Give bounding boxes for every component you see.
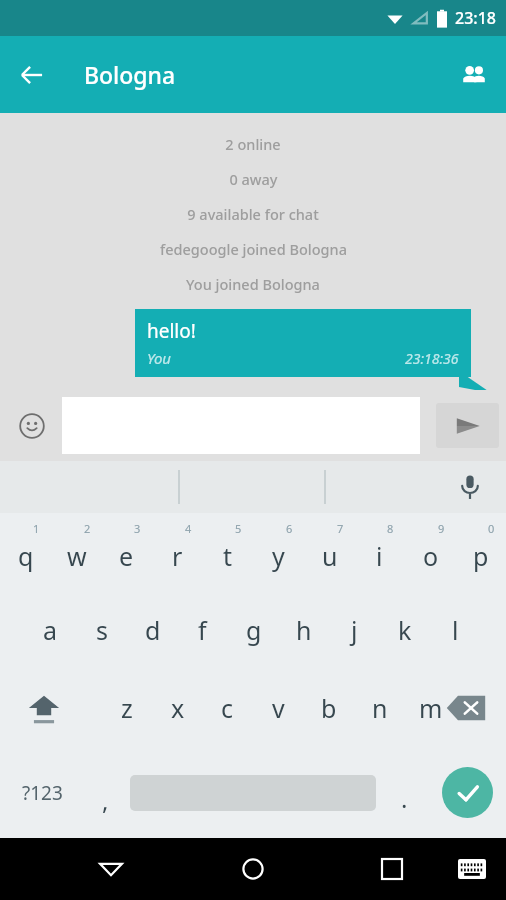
staticText: z	[121, 691, 133, 725]
staticText: v	[272, 691, 285, 725]
staticText: 23:18	[455, 7, 496, 29]
staticText: m	[419, 691, 443, 725]
staticText: i	[376, 539, 383, 573]
button[interactable]: People	[450, 51, 498, 99]
staticText: 9	[438, 521, 445, 536]
staticText: b	[321, 691, 337, 725]
staticText: You joined Bologna	[186, 274, 320, 294]
button[interactable]: n	[354, 669, 405, 747]
button[interactable]: Voice input	[448, 465, 492, 509]
button[interactable]: ,	[80, 747, 130, 838]
button[interactable]: g	[228, 591, 279, 669]
staticText: 23:18:36	[405, 349, 459, 368]
button[interactable]: z	[101, 669, 152, 747]
button[interactable]: 1	[0, 513, 51, 591]
staticText: t	[223, 539, 233, 573]
button[interactable]: 9	[405, 513, 456, 591]
button[interactable]: b	[303, 669, 354, 747]
staticText: p	[473, 539, 489, 573]
staticText: j	[351, 613, 358, 647]
button[interactable]: Back	[87, 845, 135, 893]
button[interactable]: j	[329, 591, 380, 669]
staticText: q	[18, 539, 34, 573]
staticText: 0 away	[229, 169, 278, 189]
staticText: x	[171, 691, 185, 725]
button[interactable]: v	[253, 669, 304, 747]
button[interactable]: k	[379, 591, 430, 669]
button[interactable]: m	[405, 669, 456, 747]
staticText: 4	[185, 521, 192, 536]
staticText: o	[423, 539, 439, 573]
staticText: ?123	[22, 780, 63, 806]
button[interactable]: 8	[354, 513, 405, 591]
staticText: c	[221, 691, 234, 725]
button[interactable]: Recents	[368, 845, 416, 893]
button[interactable]: Shift	[6, 669, 82, 747]
staticText: 2 online	[225, 134, 281, 154]
staticText: s	[96, 613, 108, 647]
staticText: hello!	[147, 318, 196, 344]
button[interactable]: Emoji	[8, 402, 56, 450]
staticText: k	[398, 613, 412, 647]
staticText: 0	[488, 521, 495, 536]
button[interactable]: l	[430, 591, 481, 669]
staticText: r	[172, 539, 183, 573]
staticText: 9 available for chat	[187, 204, 319, 224]
staticText: 6	[286, 521, 293, 536]
button[interactable]: 3	[101, 513, 152, 591]
staticText: ,	[102, 784, 109, 817]
staticText: 8	[387, 521, 394, 536]
staticText: n	[372, 691, 388, 725]
staticText: l	[452, 613, 459, 647]
button[interactable]: hello!	[135, 309, 471, 377]
button[interactable]: 0	[455, 513, 506, 591]
staticText: 3	[134, 521, 141, 536]
button[interactable]: 2	[51, 513, 102, 591]
staticText: d	[145, 613, 161, 647]
staticText: .	[401, 782, 408, 815]
button[interactable]: Enter	[442, 767, 493, 818]
button[interactable]: 5	[202, 513, 253, 591]
button[interactable]: .	[380, 747, 428, 838]
staticText: fedegoogle joined Bologna	[160, 239, 347, 259]
staticText: 2	[84, 521, 91, 536]
button[interactable]: c	[202, 669, 253, 747]
button[interactable]: Home	[229, 845, 277, 893]
button[interactable]: 7	[304, 513, 355, 591]
button[interactable]: d	[127, 591, 178, 669]
button[interactable]: f	[177, 591, 228, 669]
staticText: y	[272, 539, 285, 573]
button[interactable]: Backspace	[434, 669, 498, 747]
button[interactable]: ?123	[4, 747, 80, 838]
staticText: e	[119, 539, 134, 573]
staticText: h	[296, 613, 312, 647]
button[interactable]: s	[76, 591, 127, 669]
staticText: w	[67, 539, 87, 573]
button[interactable]: 6	[253, 513, 304, 591]
staticText: 7	[337, 521, 344, 536]
button[interactable]: Back	[8, 51, 56, 99]
staticText: 5	[235, 521, 242, 536]
staticText: Bologna	[84, 59, 176, 90]
staticText: a	[43, 613, 58, 647]
staticText: You	[147, 348, 172, 368]
staticText: f	[198, 613, 207, 647]
button[interactable]: Send	[436, 403, 499, 448]
staticText: g	[246, 613, 262, 647]
button[interactable]: x	[152, 669, 203, 747]
staticText: 1	[33, 521, 40, 536]
button[interactable]: a	[25, 591, 76, 669]
button[interactable]: Keyboard	[450, 847, 494, 891]
button[interactable]: h	[278, 591, 329, 669]
button[interactable]: 4	[152, 513, 203, 591]
staticText: u	[322, 539, 338, 573]
